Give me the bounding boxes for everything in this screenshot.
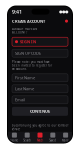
staticText: By continuing you agree to our Terms of … (11, 124, 68, 131)
button[interactable]: Home (8, 133, 21, 142)
staticText: Email (15, 97, 25, 102)
staticText: Home (10, 139, 18, 142)
staticText: Search (23, 139, 31, 142)
button[interactable]: CONTINUE (12, 107, 68, 116)
staticText: First Name (15, 75, 35, 80)
staticText: CONTINUE (30, 109, 50, 114)
staticText: 9:41 (12, 8, 22, 15)
staticText: Saved (49, 139, 56, 142)
staticText: SIGN UP CODE (15, 50, 41, 56)
button[interactable]: More (59, 133, 72, 142)
button[interactable]: Saved (46, 133, 59, 142)
staticText: Watch (36, 139, 43, 142)
staticText: ALREADY HAVE AN ACCOUNT? (12, 27, 37, 34)
staticText: CREATE ACCOUNT (12, 18, 45, 24)
button[interactable]: Search (21, 133, 34, 142)
staticText: Please note: you must have been invited … (12, 60, 52, 71)
staticText: SIGN IN (20, 39, 36, 44)
staticText: More (62, 139, 69, 142)
staticText: Last Name (15, 86, 34, 91)
button[interactable]: SIGN IN (12, 37, 68, 46)
button[interactable]: Watch (34, 133, 46, 142)
staticText: ●●● (59, 9, 68, 14)
